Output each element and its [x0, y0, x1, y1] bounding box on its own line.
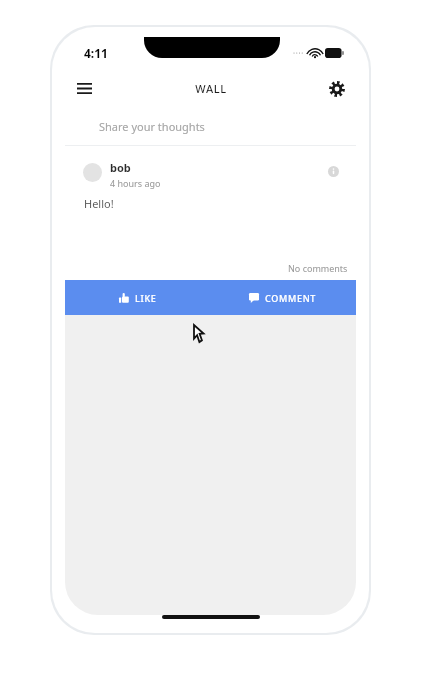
button[interactable]: Share your thoughts: [65, 107, 356, 145]
button[interactable]: COMMENT: [210, 280, 356, 315]
button[interactable]: Settings: [318, 70, 356, 107]
staticText: Share your thoughts: [99, 119, 205, 134]
button[interactable]: Menu: [65, 70, 103, 107]
staticText: COMMENT: [265, 292, 317, 304]
staticText: bob: [110, 160, 131, 175]
staticText: 4:11: [84, 45, 108, 61]
staticText: Hello!: [84, 196, 114, 211]
staticText: WALL: [195, 81, 227, 96]
button[interactable]: LIKE: [65, 280, 210, 315]
staticText: 4 hours ago: [110, 177, 161, 189]
staticText: LIKE: [135, 292, 157, 304]
button[interactable]: Post options: [324, 162, 342, 180]
staticText: No comments: [288, 262, 348, 274]
